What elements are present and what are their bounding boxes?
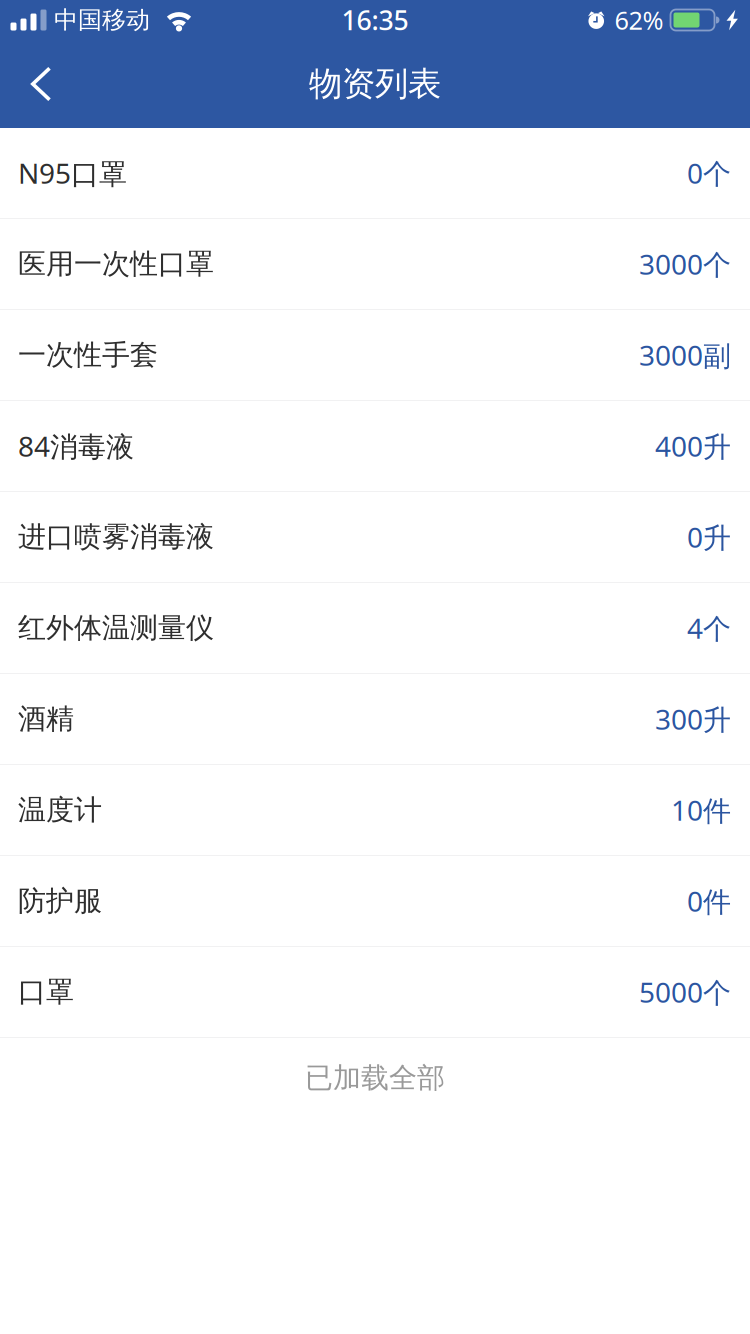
button[interactable]: 防护服 <box>0 856 750 947</box>
staticText: 62% <box>614 3 663 37</box>
staticText: 300升 <box>655 700 731 738</box>
button[interactable]: 医用一次性口罩 <box>0 219 750 310</box>
staticText: 0个 <box>687 154 731 192</box>
staticText: 4个 <box>687 609 731 647</box>
staticText: 0件 <box>687 882 731 920</box>
button[interactable]: 温度计 <box>0 765 750 856</box>
staticText: 物资列表 <box>309 63 441 104</box>
button[interactable]: 84消毒液 <box>0 401 750 492</box>
staticText: 3000个 <box>639 245 731 283</box>
staticText: 中国移动 <box>54 5 150 35</box>
button[interactable]: N95口罩 <box>0 128 750 219</box>
button[interactable]: 口罩 <box>0 947 750 1038</box>
button[interactable]: 一次性手套 <box>0 310 750 401</box>
staticText: 10件 <box>671 791 731 829</box>
staticText: 医用一次性口罩 <box>18 247 214 281</box>
staticText: 0升 <box>687 518 731 556</box>
staticText: 温度计 <box>18 793 102 827</box>
button[interactable]: 进口喷雾消毒液 <box>0 492 750 583</box>
staticText: 84消毒液 <box>18 427 134 465</box>
staticText: N95口罩 <box>18 154 127 192</box>
staticText: 3000副 <box>639 336 731 374</box>
button[interactable]: 酒精 <box>0 674 750 765</box>
staticText: 5000个 <box>639 973 731 1011</box>
staticText: 一次性手套 <box>18 338 158 372</box>
staticText: 400升 <box>655 427 731 465</box>
staticText: 防护服 <box>18 884 102 918</box>
staticText: 已加载全部 <box>305 1061 445 1095</box>
staticText: 16:35 <box>341 2 408 38</box>
button[interactable]: Back <box>0 53 75 114</box>
staticText: 红外体温测量仪 <box>18 611 214 645</box>
button[interactable]: 红外体温测量仪 <box>0 583 750 674</box>
staticText: 口罩 <box>18 975 74 1009</box>
staticText: 酒精 <box>18 702 74 736</box>
staticText: 进口喷雾消毒液 <box>18 520 214 554</box>
